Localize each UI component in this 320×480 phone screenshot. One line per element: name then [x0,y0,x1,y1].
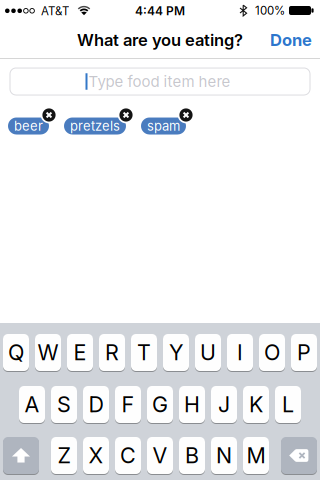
staticText: K [249,391,263,417]
staticText: Type food item here [88,72,230,90]
staticText: N [216,442,232,468]
button[interactable]: Z [51,437,77,475]
staticText: beer [14,118,43,134]
button[interactable]: Remove beer [41,107,57,123]
button[interactable]: T [131,334,157,372]
button[interactable]: J [211,386,237,424]
button[interactable]: W [35,334,61,372]
button[interactable]: Remove spam [178,107,194,123]
staticText: Y [169,339,183,365]
button[interactable]: spam [141,117,186,134]
staticText: J [218,391,230,417]
staticText: spam [147,118,180,134]
button[interactable]: Y [163,334,189,372]
button[interactable]: D [83,386,109,424]
staticText: Done [270,30,312,50]
staticText: M [246,442,265,468]
button[interactable]: C [115,437,141,475]
button[interactable]: Q [3,334,29,372]
staticText: S [57,391,71,417]
staticText: Z [57,442,70,468]
staticText: U [200,339,216,365]
button[interactable]: G [147,386,173,424]
staticText: G [152,391,168,417]
staticText: pretzels [70,118,120,134]
button[interactable]: pretzels [64,117,126,134]
button[interactable]: R [99,334,125,372]
staticText: C [120,442,136,468]
button[interactable]: U [195,334,221,372]
staticText: A [24,391,39,417]
button[interactable]: V [147,437,173,475]
button[interactable]: P [291,334,317,372]
button[interactable]: N [211,437,237,475]
staticText: O [264,339,280,365]
staticText: F [121,391,134,417]
staticText: L [282,391,294,417]
button[interactable]: Type food item here [10,68,310,95]
staticText: Q [8,339,24,365]
staticText: 100% [255,3,285,17]
staticText: T [137,339,151,365]
button[interactable]: E [67,334,93,372]
button[interactable]: I [227,334,253,372]
staticText: R [105,339,119,365]
staticText: E [73,339,86,365]
staticText: V [152,442,167,468]
button[interactable]: X [83,437,109,475]
staticText: X [88,442,103,468]
button[interactable]: K [243,386,269,424]
button[interactable]: Done [252,30,312,50]
staticText: D [88,391,103,417]
button[interactable]: beer [8,117,49,134]
staticText: B [185,442,199,468]
staticText: What are you eating? [77,30,243,50]
button[interactable]: A [19,386,45,424]
staticText: H [184,391,200,417]
button[interactable]: S [51,386,77,424]
staticText: W [37,339,58,365]
button[interactable]: Remove pretzels [118,107,134,123]
button[interactable]: H [179,386,205,424]
button[interactable]: F [115,386,141,424]
button[interactable]: Delete [281,437,317,475]
button[interactable]: O [259,334,285,372]
staticText: I [237,339,243,365]
button[interactable]: Shift [3,437,39,475]
staticText: 4:44 PM [135,3,185,18]
button[interactable]: B [179,437,205,475]
staticText: AT&T [41,4,69,18]
button[interactable]: L [275,386,301,424]
staticText: P [297,339,311,365]
button[interactable]: M [243,437,269,475]
